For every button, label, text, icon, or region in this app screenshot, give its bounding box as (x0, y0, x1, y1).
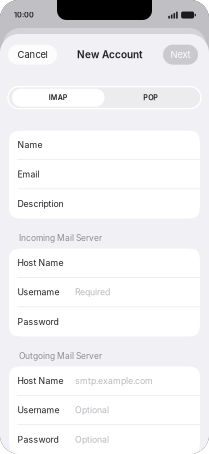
staticText: Cancel (17, 49, 47, 60)
staticText: Incoming Mail Server (19, 233, 102, 243)
button[interactable]: Password (9, 307, 200, 336)
button[interactable]: IMAP (12, 89, 104, 107)
staticText: Required (75, 287, 110, 297)
staticText: Optional (75, 405, 109, 415)
staticText: Host Name (17, 375, 63, 386)
staticText: Username (17, 287, 59, 297)
staticText: Email (17, 169, 39, 179)
staticText: Description (17, 199, 63, 209)
button[interactable]: Password (9, 425, 200, 454)
staticText: 10:00 (14, 11, 34, 19)
staticText: Host Name (17, 258, 63, 268)
button[interactable]: Next (163, 45, 198, 65)
button[interactable]: Description (9, 189, 200, 218)
button[interactable]: Username (9, 396, 200, 425)
staticText: Name (17, 140, 42, 150)
button[interactable]: Host Name (9, 248, 200, 278)
button[interactable]: Email (9, 160, 200, 189)
button[interactable]: Name (9, 131, 200, 160)
staticText: POP (143, 93, 158, 102)
staticText: Optional (75, 434, 109, 445)
staticText: smtp.example.com (75, 375, 153, 386)
staticText: Outgoing Mail Server (19, 351, 102, 361)
button[interactable]: Cancel (8, 45, 57, 65)
staticText: Next (170, 49, 190, 60)
staticText: Username (17, 405, 59, 415)
staticText: New Account (77, 49, 143, 61)
button[interactable]: Host Name (9, 366, 200, 396)
staticText: Password (17, 317, 58, 327)
button[interactable]: Username (9, 278, 200, 307)
button[interactable]: POP (104, 89, 197, 107)
staticText: Password (17, 434, 58, 445)
staticText: IMAP (49, 93, 68, 102)
